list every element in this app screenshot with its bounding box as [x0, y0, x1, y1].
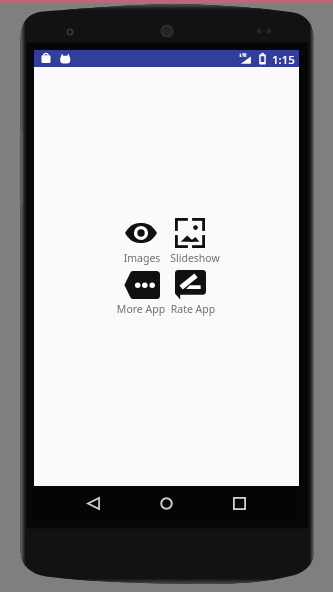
- button[interactable]: Recent apps: [221, 485, 257, 521]
- staticText: 1:15: [272, 52, 295, 68]
- staticText: Rate App: [153, 302, 233, 316]
- button[interactable]: Back: [75, 485, 111, 521]
- button[interactable]: [164, 263, 216, 307]
- button[interactable]: Home: [148, 485, 184, 521]
- staticText: Slideshow: [155, 251, 235, 265]
- button[interactable]: [116, 263, 168, 307]
- button[interactable]: [115, 211, 167, 255]
- staticText: Images: [102, 251, 182, 265]
- staticText: More App: [101, 302, 181, 316]
- button[interactable]: [164, 211, 216, 255]
